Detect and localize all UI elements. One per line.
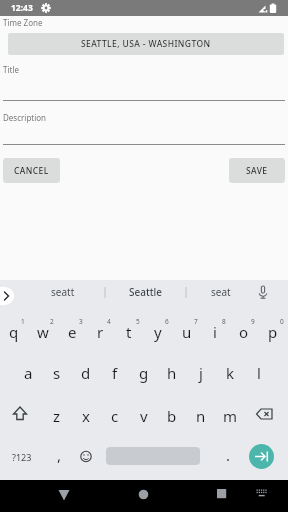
staticText: Time Zone xyxy=(3,17,43,28)
button[interactable]: Seattle xyxy=(118,283,174,301)
staticText: q xyxy=(9,322,19,342)
staticText: o xyxy=(239,322,249,342)
button[interactable]: i xyxy=(201,317,229,347)
button[interactable]: CANCEL xyxy=(3,158,60,183)
button[interactable]: o xyxy=(230,317,258,347)
button[interactable]: k xyxy=(216,358,244,388)
button[interactable]: ?123 xyxy=(6,446,38,468)
staticText: 8 xyxy=(222,317,226,326)
button[interactable]: seatt xyxy=(40,283,86,301)
staticText: ?123 xyxy=(12,451,32,463)
staticText: SAVE xyxy=(246,165,268,177)
staticText: e xyxy=(68,322,77,342)
staticText: 1 xyxy=(21,317,25,326)
staticText: m xyxy=(223,406,238,426)
button[interactable]: r xyxy=(86,317,114,347)
staticText: t xyxy=(126,322,132,342)
staticText: 6 xyxy=(165,317,169,326)
staticText: seatt xyxy=(51,285,75,299)
staticText: 9 xyxy=(251,317,255,326)
button[interactable] xyxy=(247,482,275,510)
staticText: 2 xyxy=(50,317,54,326)
button[interactable]: a xyxy=(14,358,42,388)
button[interactable]: q xyxy=(0,317,28,347)
staticText: d xyxy=(81,363,91,383)
staticText: w xyxy=(37,322,49,342)
staticText: 4 xyxy=(107,317,111,326)
button[interactable]: d xyxy=(72,358,100,388)
staticText: SEATTLE, USA - WASHINGTON xyxy=(81,38,211,50)
staticText: 0 xyxy=(280,317,284,326)
staticText: y xyxy=(154,322,162,342)
staticText: v xyxy=(140,406,148,426)
button[interactable]: j xyxy=(187,358,215,388)
button[interactable]: u xyxy=(173,317,201,347)
staticText: , xyxy=(57,445,62,465)
button[interactable]: . xyxy=(219,444,237,466)
button[interactable]: SAVE xyxy=(229,158,285,183)
staticText: p xyxy=(268,322,278,342)
staticText: Seattle xyxy=(129,285,163,299)
staticText: x xyxy=(82,406,90,426)
staticText: seat xyxy=(211,285,231,299)
staticText: g xyxy=(139,363,149,383)
staticText: 7 xyxy=(194,317,198,326)
button[interactable]: v xyxy=(130,401,158,431)
button[interactable] xyxy=(207,482,235,510)
staticText: k xyxy=(226,363,235,383)
button[interactable]: SEATTLE, USA - WASHINGTON xyxy=(8,33,284,55)
staticText: 12:43 xyxy=(11,2,33,14)
staticText: 5 xyxy=(136,317,140,326)
staticText: r xyxy=(97,322,104,342)
staticText: c xyxy=(111,406,119,426)
button[interactable]: seat xyxy=(198,283,244,301)
button[interactable]: c xyxy=(101,401,129,431)
button[interactable]: s xyxy=(43,358,71,388)
button[interactable]: g xyxy=(130,358,158,388)
button[interactable]: , xyxy=(50,444,68,466)
staticText: f xyxy=(112,363,118,383)
staticText: n xyxy=(196,406,206,426)
button[interactable]: m xyxy=(216,401,244,431)
button[interactable] xyxy=(130,482,158,510)
staticText: z xyxy=(53,406,61,426)
staticText: h xyxy=(167,363,177,383)
staticText: j xyxy=(199,363,203,383)
button[interactable] xyxy=(0,287,14,305)
button[interactable]: l xyxy=(245,358,273,388)
button[interactable] xyxy=(249,444,274,469)
staticText: i xyxy=(213,322,217,342)
button[interactable]: z xyxy=(43,401,71,431)
button[interactable] xyxy=(50,482,78,510)
button[interactable]: t xyxy=(115,317,143,347)
staticText: CANCEL xyxy=(14,165,49,177)
staticText: l xyxy=(257,363,261,383)
staticText: 3 xyxy=(79,317,83,326)
button[interactable]: e xyxy=(58,317,86,347)
button[interactable]: f xyxy=(101,358,129,388)
button[interactable]: n xyxy=(187,401,215,431)
staticText: u xyxy=(182,322,192,342)
staticText: . xyxy=(226,445,231,465)
staticText: Description xyxy=(3,112,47,123)
button[interactable]: y xyxy=(144,317,172,347)
staticText: a xyxy=(24,363,33,383)
button[interactable]: b xyxy=(158,401,186,431)
button[interactable]: w xyxy=(29,317,57,347)
button[interactable]: h xyxy=(158,358,186,388)
staticText: Title xyxy=(3,64,19,75)
button[interactable]: p xyxy=(259,317,287,347)
button[interactable]: x xyxy=(72,401,100,431)
staticText: s xyxy=(53,363,61,383)
staticText: b xyxy=(167,406,177,426)
